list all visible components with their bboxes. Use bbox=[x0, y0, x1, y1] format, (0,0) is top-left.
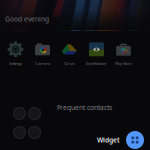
button[interactable]: Contact bbox=[28, 126, 41, 139]
staticText: Play Store bbox=[115, 61, 132, 66]
button[interactable]: Add widget bbox=[126, 131, 144, 149]
staticText: Frequent contacts bbox=[57, 103, 112, 112]
button[interactable]: Drive bbox=[56, 40, 83, 67]
button[interactable]: Settings bbox=[2, 40, 29, 67]
staticText: EarthViewer bbox=[86, 61, 107, 66]
staticText: Good evening bbox=[5, 15, 49, 23]
staticText: Settings bbox=[9, 61, 22, 66]
staticText: Drive bbox=[64, 61, 74, 66]
button[interactable]: Play Store bbox=[110, 40, 137, 67]
button[interactable]: Contact bbox=[28, 107, 41, 120]
button[interactable]: Camera bbox=[29, 40, 56, 67]
staticText: Camera bbox=[35, 61, 50, 66]
staticText: Widget bbox=[97, 136, 120, 144]
button[interactable]: Contact bbox=[13, 107, 26, 120]
button[interactable]: EarthViewer bbox=[83, 40, 110, 67]
button[interactable]: Contact bbox=[13, 126, 26, 139]
